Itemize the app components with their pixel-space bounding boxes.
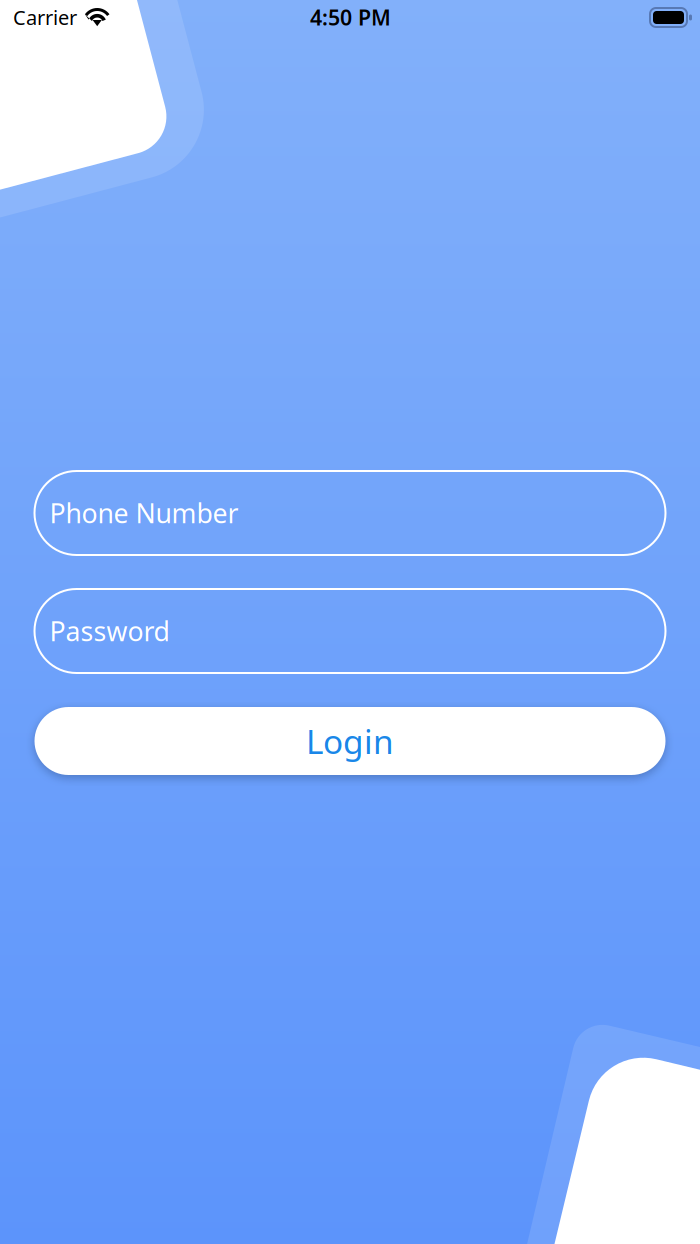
button[interactable]: Login <box>34 707 665 775</box>
staticText: Phone Number <box>49 495 238 531</box>
staticText: Password <box>49 613 169 649</box>
staticText: Login <box>306 719 394 763</box>
button[interactable]: Password <box>34 589 665 673</box>
button[interactable]: Phone Number <box>34 471 665 555</box>
staticText: Carrier <box>13 4 77 31</box>
staticText: 4:50 PM <box>310 3 391 31</box>
